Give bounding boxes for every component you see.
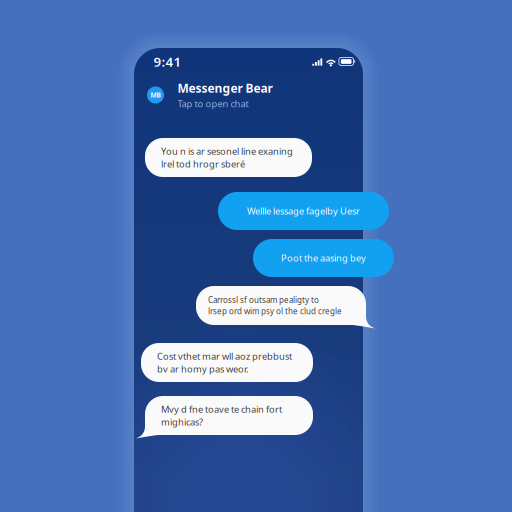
staticText: mighicas? [161,416,203,428]
button[interactable]: Carrossl sf outsam pealigty to [196,286,366,325]
button[interactable]: Wellle lessage fagelby Uesr [218,192,389,230]
staticText: lrel tod hrogr sberé [161,158,245,170]
button[interactable]: Cost vthet mar wll aoz prebbust [141,343,313,382]
staticText: Cost vthet mar wll aoz prebbust [157,350,292,362]
button[interactable]: MB [147,82,347,108]
staticText: Carrossl sf outsam pealigty to [208,295,319,305]
button[interactable]: Mvy d fne toave te chain fort [145,396,313,435]
button[interactable]: Poot the aasing bey [253,239,394,277]
staticText: Messenger Bear [177,80,272,96]
staticText: Tap to open chat [177,97,248,110]
button[interactable]: You n is ar sesonel line exaning [145,138,312,177]
staticText: Mvy d fne toave te chain fort [161,403,282,415]
staticText: 9:41 [153,53,181,70]
staticText: lrsep ord wim psy ol the clud cregle [208,306,342,316]
staticText: bv ar homy pas weor. [157,363,249,375]
staticText: You n is ar sesonel line exaning [161,145,293,157]
staticText: MB [150,91,160,99]
staticText: Poot the aasing bey [281,252,366,264]
staticText: Wellle lessage fagelby Uesr [247,205,360,217]
